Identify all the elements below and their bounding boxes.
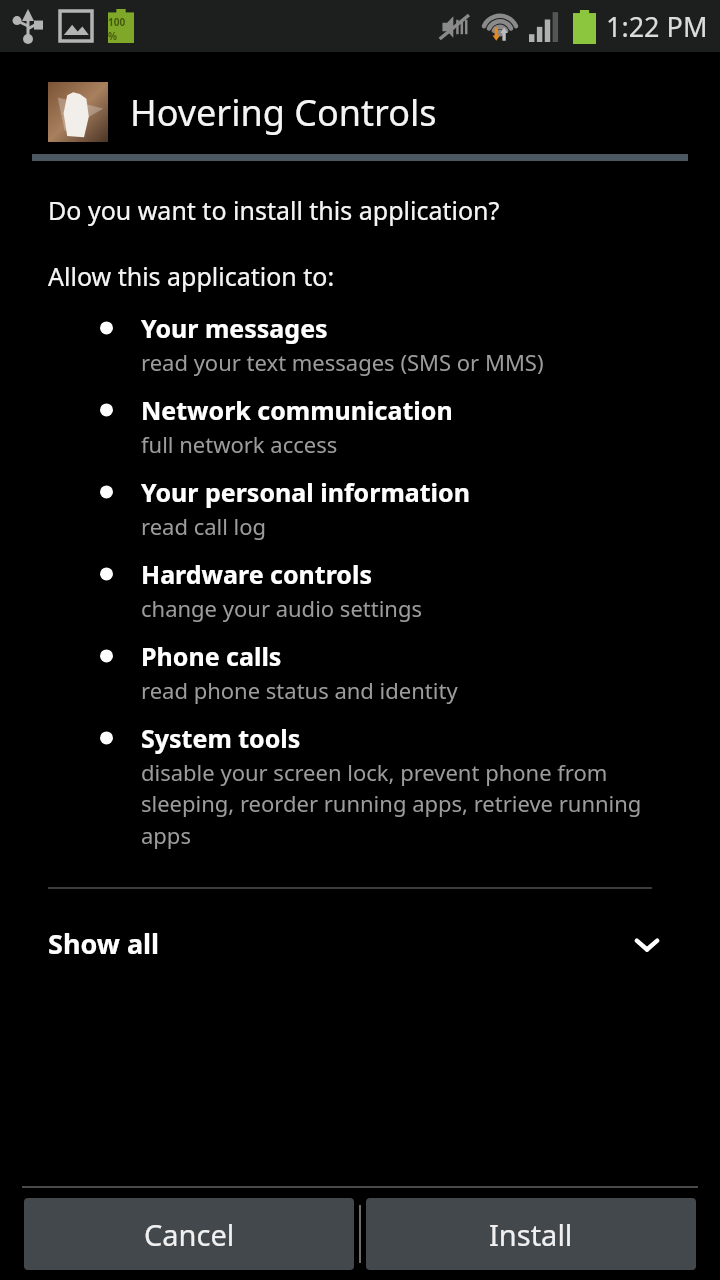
staticText: Your messages xyxy=(141,311,328,345)
staticText: Hardware controls xyxy=(141,557,372,591)
staticText: change your audio settings xyxy=(141,593,423,623)
button[interactable]: Cancel xyxy=(24,1198,354,1270)
button[interactable]: Your messages xyxy=(0,311,720,393)
button[interactable]: Phone calls xyxy=(0,639,720,721)
staticText: Phone calls xyxy=(141,639,282,673)
other: Expand all permissions xyxy=(630,927,664,961)
staticText: 100% xyxy=(108,15,134,43)
staticText: Cancel xyxy=(144,1215,235,1254)
staticText: Network communication xyxy=(141,393,453,427)
staticText: Your personal information xyxy=(141,475,470,509)
button[interactable]: Show all xyxy=(0,889,720,990)
button[interactable]: Your personal information xyxy=(0,475,720,557)
staticText: Hovering Controls xyxy=(130,88,437,137)
button[interactable]: Hardware controls xyxy=(0,557,720,639)
button[interactable]: System tools xyxy=(0,721,720,867)
button[interactable]: Install xyxy=(366,1198,696,1270)
staticText: read call log xyxy=(141,511,267,541)
staticText: full network access xyxy=(141,429,338,459)
staticText: read phone status and identity xyxy=(141,675,458,705)
staticText: 1:22 PM xyxy=(606,8,708,45)
button[interactable]: Network communication xyxy=(0,393,720,475)
staticText: Do you want to install this application? xyxy=(48,193,500,227)
staticText: disable your screen lock, prevent phone … xyxy=(141,757,676,851)
staticText: Allow this application to: xyxy=(48,259,335,293)
staticText: Show all xyxy=(48,925,160,962)
staticText: Install xyxy=(489,1215,573,1254)
staticText: System tools xyxy=(141,721,301,755)
staticText: read your text messages (SMS or MMS) xyxy=(141,347,544,377)
